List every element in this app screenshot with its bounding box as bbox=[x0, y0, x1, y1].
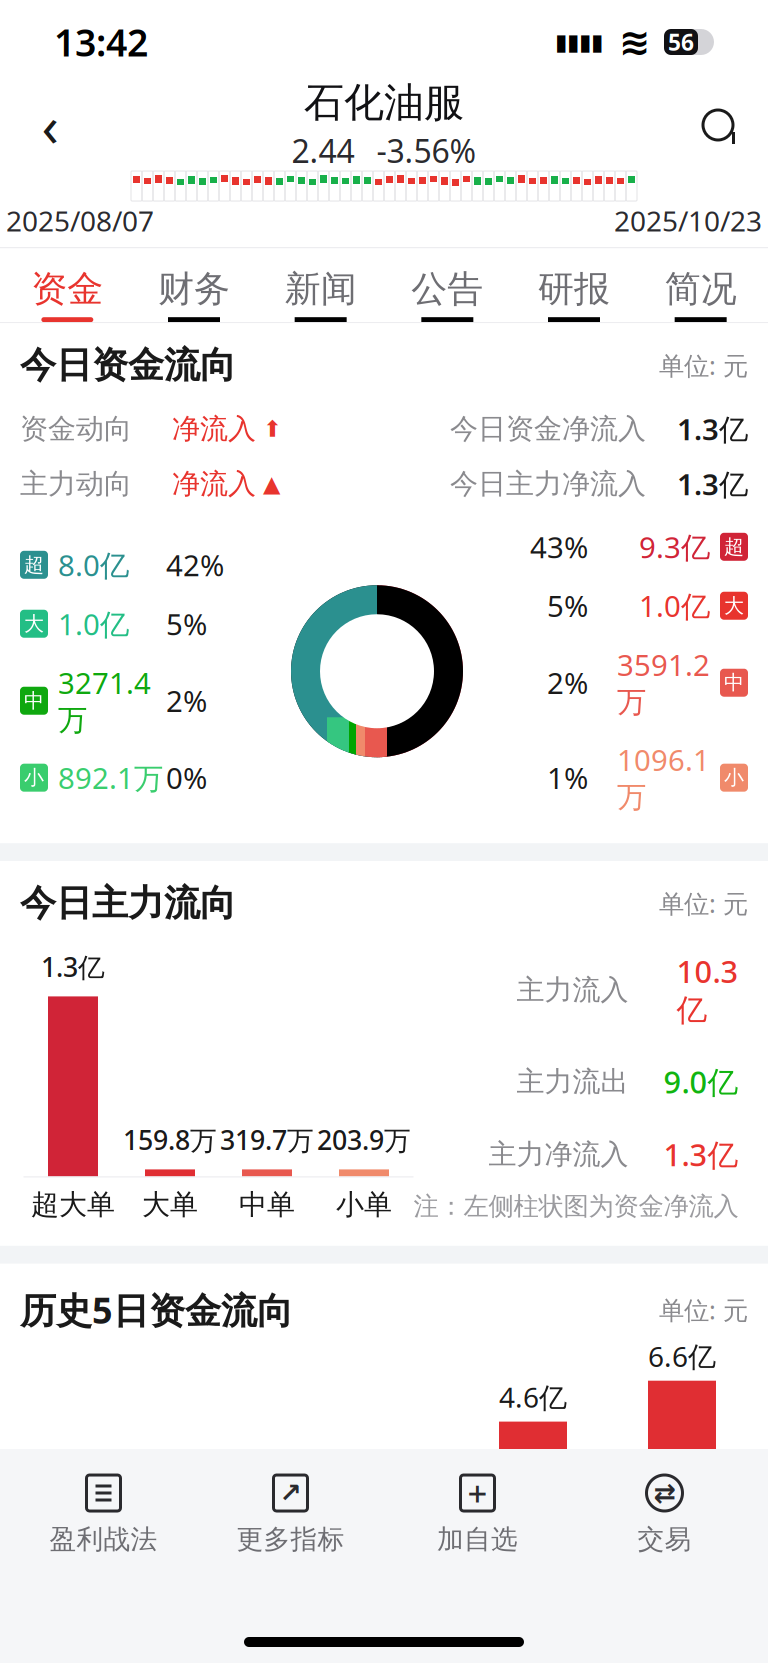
button[interactable]: ⇄ bbox=[571, 1467, 758, 1562]
staticText: 43% bbox=[530, 527, 588, 566]
staticText: –511.8万 bbox=[178, 1542, 292, 1579]
staticText: 大 bbox=[24, 611, 44, 636]
staticText: 1% bbox=[547, 758, 588, 797]
staticText: 159.8万 bbox=[123, 1122, 217, 1157]
staticText: 中 bbox=[24, 688, 44, 713]
button[interactable]: 公告 bbox=[384, 248, 511, 322]
staticText: 8.0亿 bbox=[58, 545, 129, 584]
staticText: 盈利战法 bbox=[49, 1523, 157, 1556]
staticText bbox=[678, 1539, 685, 1576]
staticText: 3271.4万 bbox=[58, 663, 151, 738]
staticText: + bbox=[467, 1470, 487, 1516]
staticText: 小 bbox=[24, 765, 44, 790]
staticText: 5% bbox=[547, 586, 588, 625]
staticText: 财务 bbox=[158, 267, 230, 311]
button[interactable]: 财务 bbox=[131, 248, 257, 322]
staticText: 主力流出 bbox=[516, 1064, 628, 1099]
staticText: 净流入 bbox=[172, 467, 256, 501]
staticText: -3.56% bbox=[376, 129, 476, 172]
staticText: 9.3亿 bbox=[639, 527, 710, 566]
staticText: 4.6亿 bbox=[499, 1378, 567, 1416]
button[interactable]: 盈利战法 bbox=[10, 1467, 197, 1562]
staticText: 超 bbox=[24, 552, 44, 577]
staticText: 2% bbox=[547, 663, 588, 702]
staticText: 石化油服 bbox=[304, 78, 464, 127]
button[interactable]: ↗ bbox=[197, 1467, 384, 1562]
staticText: 小单 bbox=[336, 1187, 392, 1222]
staticText: 6.6亿 bbox=[648, 1337, 716, 1375]
staticText: ⇄ bbox=[653, 1478, 675, 1508]
staticText: 319.7万 bbox=[220, 1122, 314, 1157]
staticText: 1.3亿 bbox=[41, 949, 105, 984]
staticText: 研报 bbox=[538, 267, 610, 311]
button[interactable]: Search bbox=[690, 97, 746, 153]
staticText: 2.44 bbox=[291, 129, 354, 172]
staticText: 资金动向 bbox=[20, 412, 132, 446]
staticText: 1.0亿 bbox=[58, 604, 129, 643]
staticText: 加自选 bbox=[437, 1523, 518, 1556]
staticText: ▲ bbox=[256, 471, 280, 497]
staticText: ≋ bbox=[619, 21, 650, 63]
staticText: 新闻 bbox=[285, 267, 357, 311]
staticText: 1.3亿 bbox=[677, 464, 748, 503]
staticText: 超 bbox=[724, 534, 744, 559]
staticText: 今日主力净流入 bbox=[450, 467, 646, 501]
staticText: 2025/08/07 bbox=[6, 202, 154, 239]
staticText: 203.9万 bbox=[317, 1122, 411, 1157]
button[interactable]: 新闻 bbox=[257, 248, 384, 322]
staticText: 1.0亿 bbox=[639, 586, 710, 625]
staticText: 5% bbox=[166, 604, 207, 643]
staticText: 公告 bbox=[411, 267, 483, 311]
staticText: 2025/10/23 bbox=[614, 202, 762, 239]
staticText: 大 bbox=[724, 593, 744, 618]
staticText: 3591.2万 bbox=[617, 645, 710, 720]
staticText: 中单 bbox=[239, 1187, 295, 1222]
staticText: 注：左侧柱状图为资金净流入 bbox=[413, 1191, 738, 1222]
button[interactable]: 简况 bbox=[637, 248, 764, 322]
staticText: 10.3亿 bbox=[676, 951, 738, 1029]
staticText: 净流入 bbox=[172, 412, 256, 446]
staticText: 0% bbox=[166, 758, 207, 797]
staticText: 中 bbox=[724, 670, 744, 695]
staticText: 超大单 bbox=[31, 1187, 115, 1222]
button[interactable]: Back bbox=[22, 97, 78, 153]
staticText: 单位: 元 bbox=[659, 1293, 748, 1326]
staticText: 13:42 bbox=[54, 17, 148, 67]
staticText: 交易 bbox=[637, 1523, 691, 1556]
staticText: ▮▮▮▮ bbox=[555, 29, 603, 55]
staticText: 今日主力流向 bbox=[20, 881, 236, 925]
staticText: 单位: 元 bbox=[659, 348, 748, 382]
staticText: 今日资金流向 bbox=[20, 343, 236, 387]
button[interactable]: 资金 bbox=[4, 248, 131, 322]
staticText: 今日资金净流入 bbox=[450, 412, 646, 446]
staticText: 大单 bbox=[142, 1187, 198, 1222]
staticText: 更多指标 bbox=[236, 1523, 344, 1556]
button[interactable]: + bbox=[384, 1467, 571, 1562]
staticText: ‹ bbox=[41, 88, 58, 162]
staticText: 42% bbox=[166, 545, 224, 584]
staticText: 56 bbox=[668, 27, 694, 57]
button[interactable]: 研报 bbox=[511, 248, 637, 322]
staticText: 单位: 元 bbox=[659, 886, 748, 920]
staticText: 历史5日资金流向 bbox=[20, 1286, 293, 1334]
staticText: 简况 bbox=[665, 267, 737, 311]
staticText: 资金 bbox=[31, 267, 103, 311]
staticText: 9.0亿 bbox=[663, 1061, 738, 1102]
staticText: 1.3亿 bbox=[663, 1134, 738, 1175]
staticText: 主力动向 bbox=[20, 467, 132, 501]
staticText: 小 bbox=[724, 765, 744, 790]
staticText: ↗ bbox=[279, 1478, 301, 1508]
staticText: 2% bbox=[166, 681, 207, 720]
staticText: 892.1万 bbox=[58, 758, 163, 797]
staticText: 1.3亿 bbox=[677, 409, 748, 448]
staticText: 主力流入 bbox=[516, 973, 628, 1007]
staticText: ⬆ bbox=[256, 416, 282, 442]
staticText: 主力净流入 bbox=[488, 1137, 628, 1171]
